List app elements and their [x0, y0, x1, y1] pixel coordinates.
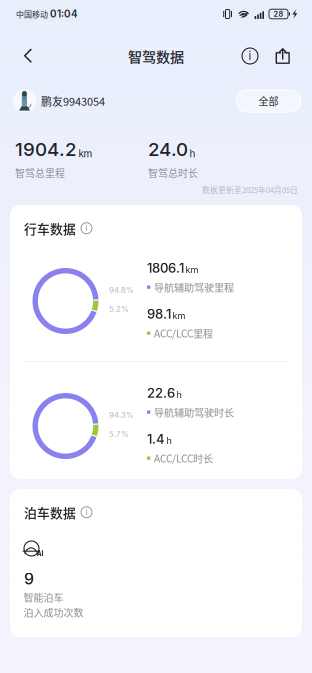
staticText: h: [166, 435, 171, 446]
staticText: 导航辅助驾驶里程: [154, 280, 234, 294]
staticText: 智驾数据: [128, 46, 184, 66]
staticText: 5.2%: [109, 304, 129, 314]
staticText: 泊入成功次数: [23, 605, 83, 619]
staticText: 行车数据: [24, 219, 76, 237]
staticText: 全部: [258, 94, 278, 108]
staticText: 智能泊车: [23, 590, 63, 604]
staticText: 94.3%: [109, 410, 134, 420]
staticText: km: [172, 310, 185, 321]
staticText: 1904.2: [15, 138, 77, 161]
button[interactable]: 说明: [81, 507, 92, 518]
staticText: 泊车数据: [24, 503, 76, 521]
staticText: 1806.1: [147, 260, 184, 276]
staticText: ACC/LCC时长: [154, 451, 213, 465]
staticText: km: [78, 147, 92, 160]
staticText: 智驾总时长: [148, 166, 198, 180]
staticText: i: [85, 223, 87, 233]
staticText: 1.4: [147, 431, 165, 447]
staticText: 导航辅助驾驶时长: [154, 405, 234, 419]
staticText: h: [176, 389, 181, 400]
button[interactable]: 分享: [267, 36, 299, 76]
staticText: ACC/LCC里程: [154, 326, 213, 340]
staticText: 98.1: [147, 306, 171, 322]
staticText: 24.0: [148, 138, 188, 161]
button[interactable]: 鹏友9943054: [13, 89, 105, 112]
staticText: h: [189, 147, 195, 160]
staticText: 94.8%: [109, 285, 134, 295]
button[interactable]: 全部: [236, 89, 301, 112]
button[interactable]: 说明: [81, 223, 92, 234]
staticText: km: [185, 264, 198, 275]
staticText: 中国移动: [16, 8, 48, 20]
staticText: AI: [36, 549, 43, 558]
staticText: i: [85, 507, 87, 517]
staticText: i: [248, 49, 251, 63]
staticText: 22.6: [147, 385, 175, 401]
button[interactable]: 返回: [8, 36, 48, 76]
button[interactable]: 说明: [233, 36, 267, 76]
staticText: 28: [273, 9, 283, 18]
staticText: 数据更新至2025年04月05日: [202, 184, 298, 195]
staticText: 鹏友9943054: [41, 93, 105, 109]
staticText: 5.7%: [109, 429, 129, 439]
staticText: 01:04: [48, 8, 78, 20]
staticText: 智驾总里程: [15, 166, 65, 180]
staticText: 9: [24, 569, 34, 588]
